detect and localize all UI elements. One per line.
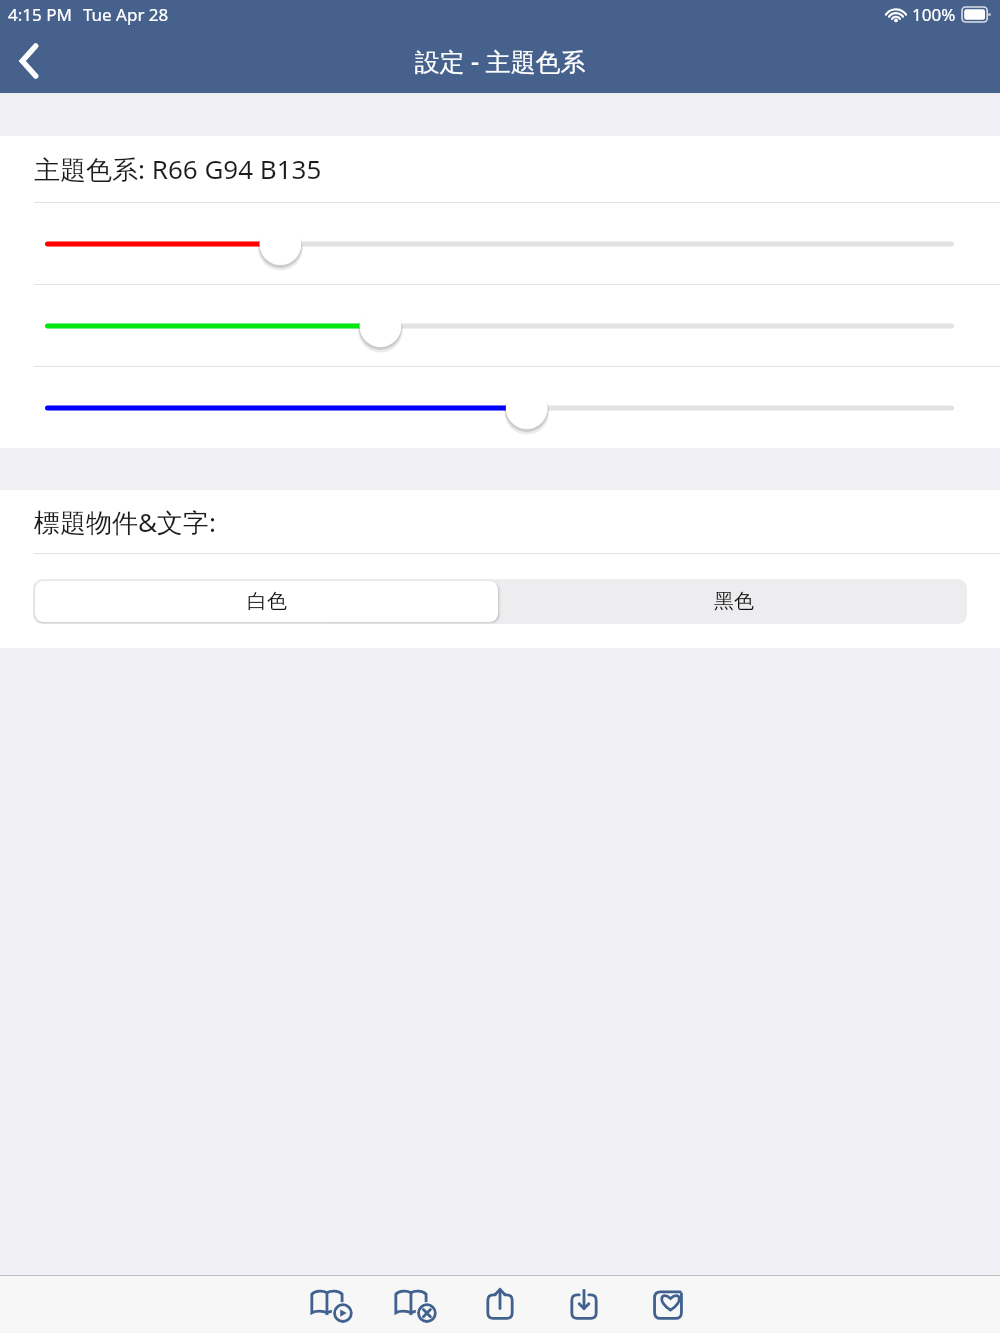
staticText: 主題色系: R66 G94 B135 bbox=[34, 151, 322, 187]
button[interactable]: Download bbox=[553, 1276, 615, 1332]
staticText: 黑色 bbox=[714, 589, 754, 614]
button[interactable]: Color slider bbox=[0, 203, 1000, 284]
button[interactable]: 黑色 bbox=[500, 579, 967, 624]
staticText: 白色 bbox=[247, 589, 287, 614]
button[interactable]: Back bbox=[0, 32, 58, 90]
staticText: 標題物件&文字: bbox=[34, 504, 217, 540]
staticText: Tue Apr 28 bbox=[83, 3, 169, 26]
button[interactable]: Close book bbox=[385, 1276, 447, 1332]
staticText: 100% bbox=[912, 3, 956, 26]
button[interactable]: Share bbox=[469, 1276, 531, 1332]
button[interactable]: Color slider bbox=[0, 367, 1000, 448]
staticText: 設定 - 主題色系 bbox=[414, 44, 586, 78]
button[interactable]: Color slider bbox=[0, 285, 1000, 366]
staticText: 4:15 PM bbox=[8, 3, 72, 26]
button[interactable]: Favorite bbox=[637, 1276, 699, 1332]
button[interactable]: Read aloud bbox=[301, 1276, 363, 1332]
button[interactable]: 白色 bbox=[35, 581, 498, 622]
